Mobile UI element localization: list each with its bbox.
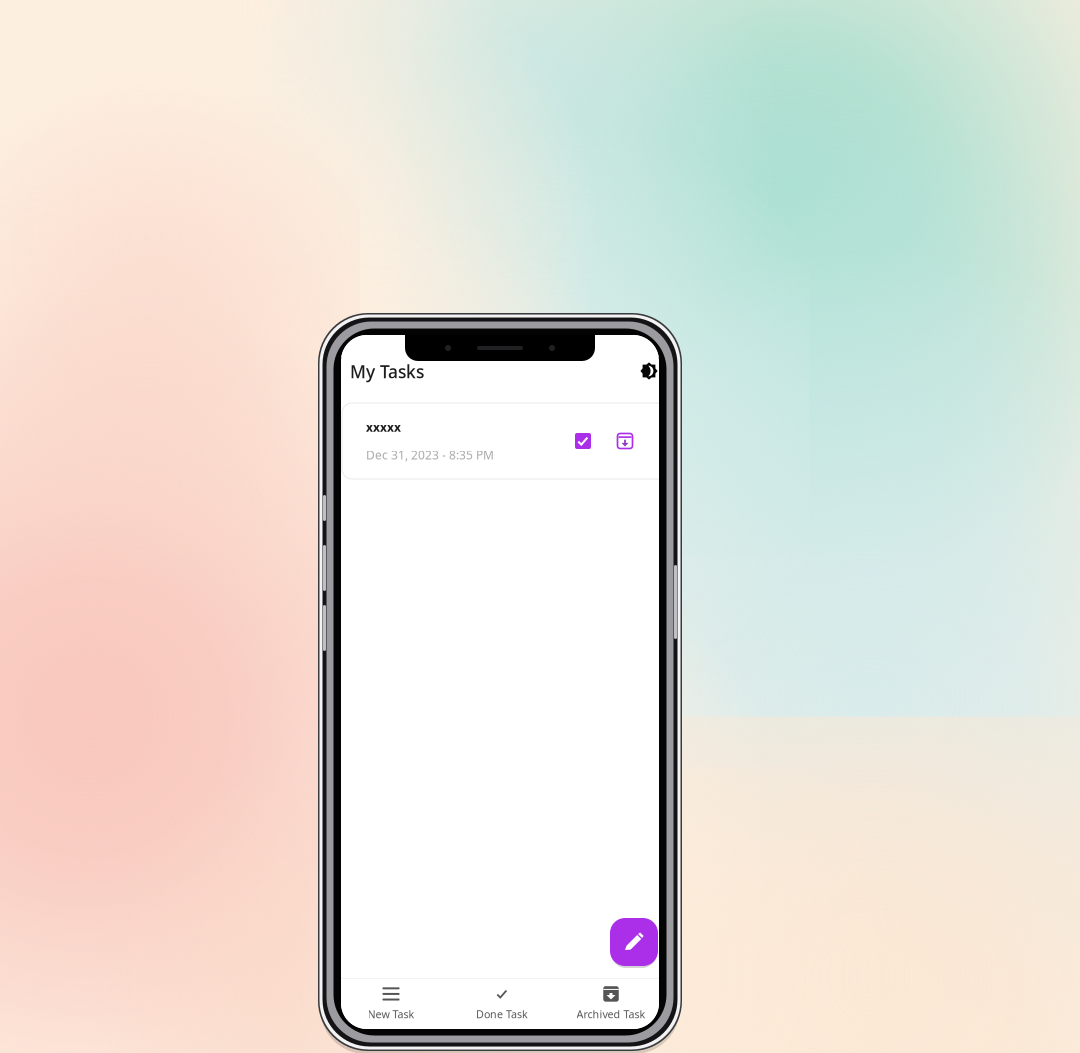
staticText: New Task xyxy=(367,1007,414,1021)
button[interactable]: xxxxx xyxy=(335,403,665,479)
staticText: Dec 31, 2023 - 8:35 PM xyxy=(366,447,494,463)
button[interactable]: New task xyxy=(610,918,658,966)
staticText: xxxxx xyxy=(366,419,401,435)
button[interactable]: New Task xyxy=(341,986,441,1021)
button[interactable]: Mark done xyxy=(575,433,591,449)
staticText: Archived Task xyxy=(576,1007,645,1021)
staticText: Done Task xyxy=(476,1007,528,1021)
staticText: My Tasks xyxy=(350,360,424,383)
button[interactable]: Archived Task xyxy=(563,986,659,1021)
button[interactable]: Archive task xyxy=(617,433,633,449)
button[interactable]: Done Task xyxy=(441,986,563,1021)
button[interactable]: Toggle dark mode xyxy=(640,362,658,380)
